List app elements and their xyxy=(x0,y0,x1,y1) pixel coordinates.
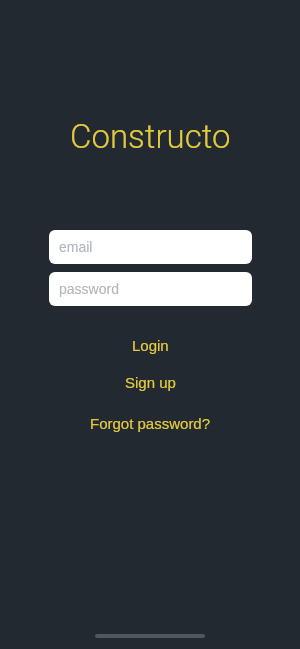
button[interactable]: email xyxy=(49,230,252,264)
staticText: password xyxy=(59,281,119,297)
staticText: Sign up xyxy=(125,374,176,391)
staticText: email xyxy=(59,239,93,255)
button[interactable]: Login xyxy=(124,335,177,356)
staticText: Constructo xyxy=(70,117,231,156)
button[interactable]: Sign up xyxy=(117,372,184,393)
button[interactable]: password xyxy=(49,272,252,306)
staticText: Login xyxy=(132,337,169,354)
staticText: Forgot password? xyxy=(90,415,211,432)
button[interactable]: Forgot password? xyxy=(82,413,219,434)
